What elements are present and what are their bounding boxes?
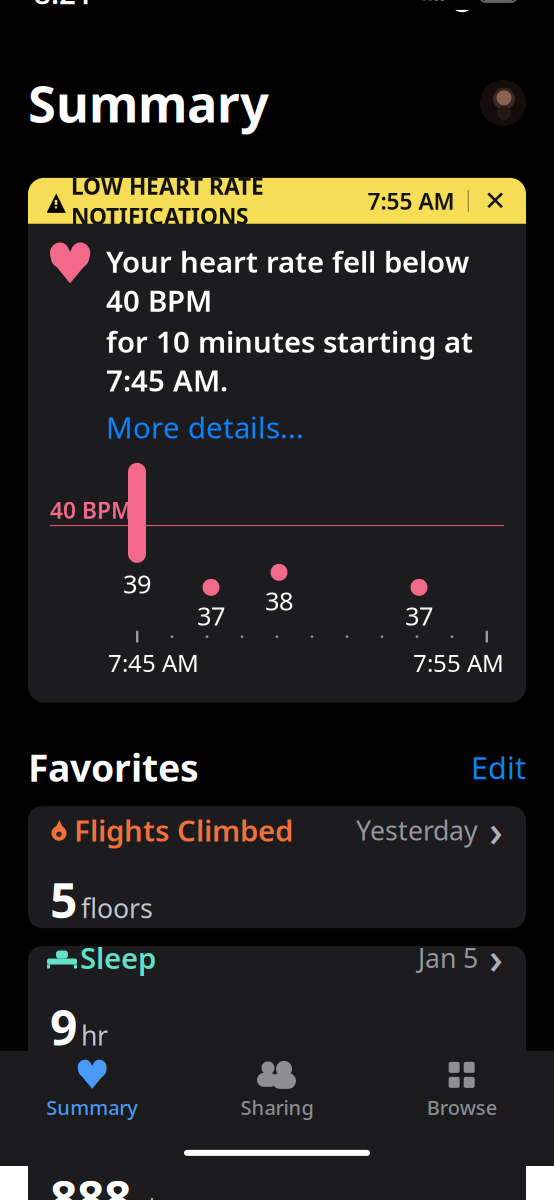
button[interactable]: ▲ bbox=[28, 1104, 526, 1200]
button[interactable]: Sleep bbox=[28, 946, 526, 1086]
staticText: 888 bbox=[50, 1166, 131, 1200]
staticText: More details... bbox=[106, 408, 304, 447]
staticText: 7:55 AM bbox=[413, 647, 504, 679]
button[interactable]: ▲ bbox=[28, 806, 526, 928]
staticText: 5 bbox=[50, 868, 77, 931]
staticText: Summary bbox=[28, 69, 269, 136]
button[interactable]: More details... bbox=[106, 402, 304, 447]
staticText: Browse bbox=[427, 1094, 497, 1120]
staticText: 8:18 AM bbox=[378, 1110, 478, 1146]
staticText: Sharing bbox=[240, 1094, 313, 1120]
button[interactable]: ♥ bbox=[0, 1051, 185, 1120]
staticText: 38 bbox=[265, 584, 293, 617]
staticText: hr bbox=[81, 1017, 108, 1053]
staticText: 7:45 AM bbox=[108, 647, 199, 679]
staticText: 9 bbox=[50, 995, 77, 1059]
staticText: floors bbox=[81, 890, 153, 926]
staticText: ▲ bbox=[46, 186, 65, 215]
staticText: LOW HEART RATE NOTIFICATIONS bbox=[71, 171, 264, 231]
staticText: ♥ bbox=[45, 232, 95, 296]
staticText: ✕ bbox=[484, 186, 506, 216]
staticText: ▲ bbox=[52, 815, 65, 835]
staticText: Summary bbox=[46, 1094, 138, 1120]
staticText: › bbox=[489, 802, 503, 859]
staticText: Your heart rate fell below 40 BPM bbox=[106, 242, 469, 320]
staticText: ♥ bbox=[74, 1052, 110, 1098]
staticText: Flights Climbed bbox=[74, 811, 293, 850]
staticText: for 10 minutes starting at 7:45 AM. bbox=[106, 322, 473, 400]
staticText: › bbox=[489, 1100, 503, 1157]
staticText: › bbox=[489, 929, 503, 986]
staticText: Time In Bed bbox=[50, 1067, 199, 1102]
button[interactable]: Dismiss bbox=[482, 188, 508, 214]
button[interactable]: Edit bbox=[471, 747, 526, 788]
staticText: 40 BPM bbox=[50, 495, 132, 525]
button[interactable]: Browse bbox=[369, 1051, 554, 1120]
staticText: Steps bbox=[74, 1109, 151, 1148]
staticText: 7:55 AM bbox=[368, 186, 455, 216]
staticText: 37 bbox=[197, 599, 225, 632]
staticText: Yesterday bbox=[356, 812, 478, 848]
button[interactable]: Sharing bbox=[185, 1051, 369, 1120]
staticText: Jan 5 bbox=[418, 940, 478, 975]
staticText: 39 bbox=[123, 567, 151, 600]
staticText: Sleep bbox=[80, 938, 156, 977]
staticText: ▲ bbox=[52, 1113, 65, 1133]
staticText: 8:21 bbox=[34, 0, 93, 12]
button[interactable]: Profile bbox=[480, 80, 526, 126]
staticText: Edit bbox=[471, 747, 526, 788]
staticText: 37 bbox=[405, 599, 433, 632]
staticText: Favorites bbox=[28, 742, 199, 792]
staticText: steps bbox=[135, 1188, 202, 1200]
